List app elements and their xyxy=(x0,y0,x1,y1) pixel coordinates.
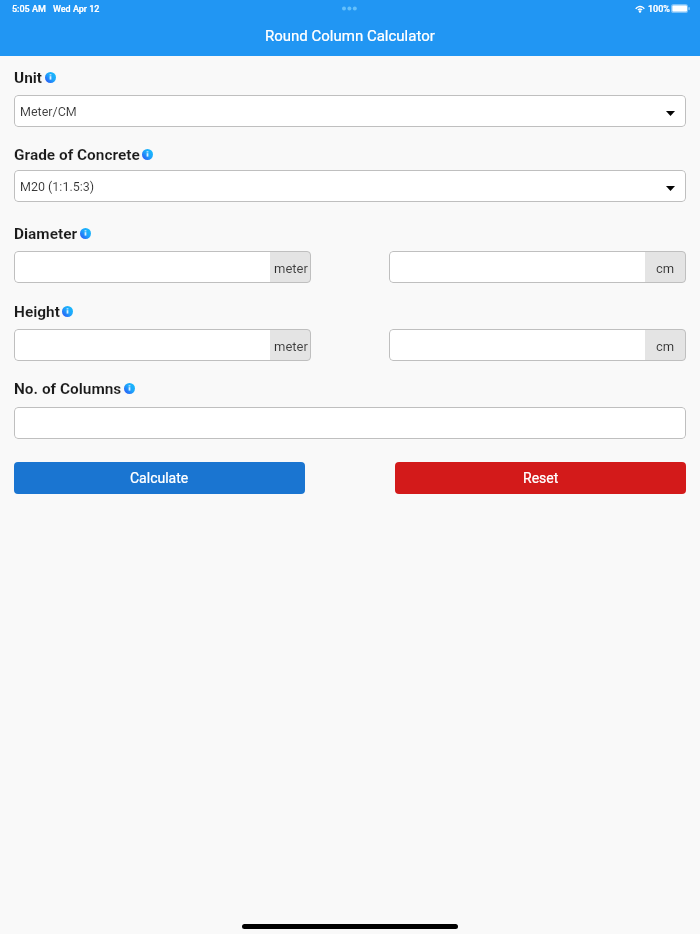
staticText: Meter/CM xyxy=(20,104,77,119)
button[interactable]: About No. of Columns xyxy=(124,383,135,394)
staticText: Diameter xyxy=(14,225,78,243)
other: Open dropdown xyxy=(666,107,675,116)
other: Wi-Fi xyxy=(635,4,645,13)
button[interactable]: Reset xyxy=(395,462,686,494)
button[interactable]: cm xyxy=(389,329,686,361)
button[interactable]: cm xyxy=(389,251,686,283)
staticText: meter xyxy=(274,261,308,276)
staticText: 5:05 AM xyxy=(12,4,46,15)
staticText: No. of Columns xyxy=(14,380,122,398)
other: Battery xyxy=(671,4,691,14)
staticText: Calculate xyxy=(130,470,189,486)
button[interactable]: meter xyxy=(14,251,311,283)
button[interactable]: meter xyxy=(14,329,311,361)
staticText: Wed Apr 12 xyxy=(53,4,100,15)
staticText: Grade of Concrete xyxy=(14,146,140,164)
button[interactable]: M20 (1:1.5:3) xyxy=(14,170,686,202)
staticText: 100% xyxy=(648,4,670,15)
staticText: cm xyxy=(656,339,675,354)
button[interactable]: About Grade of Concrete xyxy=(142,149,153,160)
button[interactable]: About Unit xyxy=(45,72,56,83)
button[interactable]: Calculate xyxy=(14,462,305,494)
staticText: Reset xyxy=(523,470,559,486)
staticText: Unit xyxy=(14,69,43,87)
staticText: Height xyxy=(14,303,60,321)
button[interactable] xyxy=(14,407,686,439)
button[interactable]: About Diameter xyxy=(80,228,91,239)
button[interactable]: About Height xyxy=(62,306,73,317)
staticText: cm xyxy=(656,261,675,276)
staticText: M20 (1:1.5:3) xyxy=(20,179,95,194)
button[interactable]: Meter/CM xyxy=(14,95,686,127)
staticText: Round Column Calculator xyxy=(265,27,435,45)
staticText: meter xyxy=(274,339,308,354)
other: Open dropdown xyxy=(666,182,675,191)
